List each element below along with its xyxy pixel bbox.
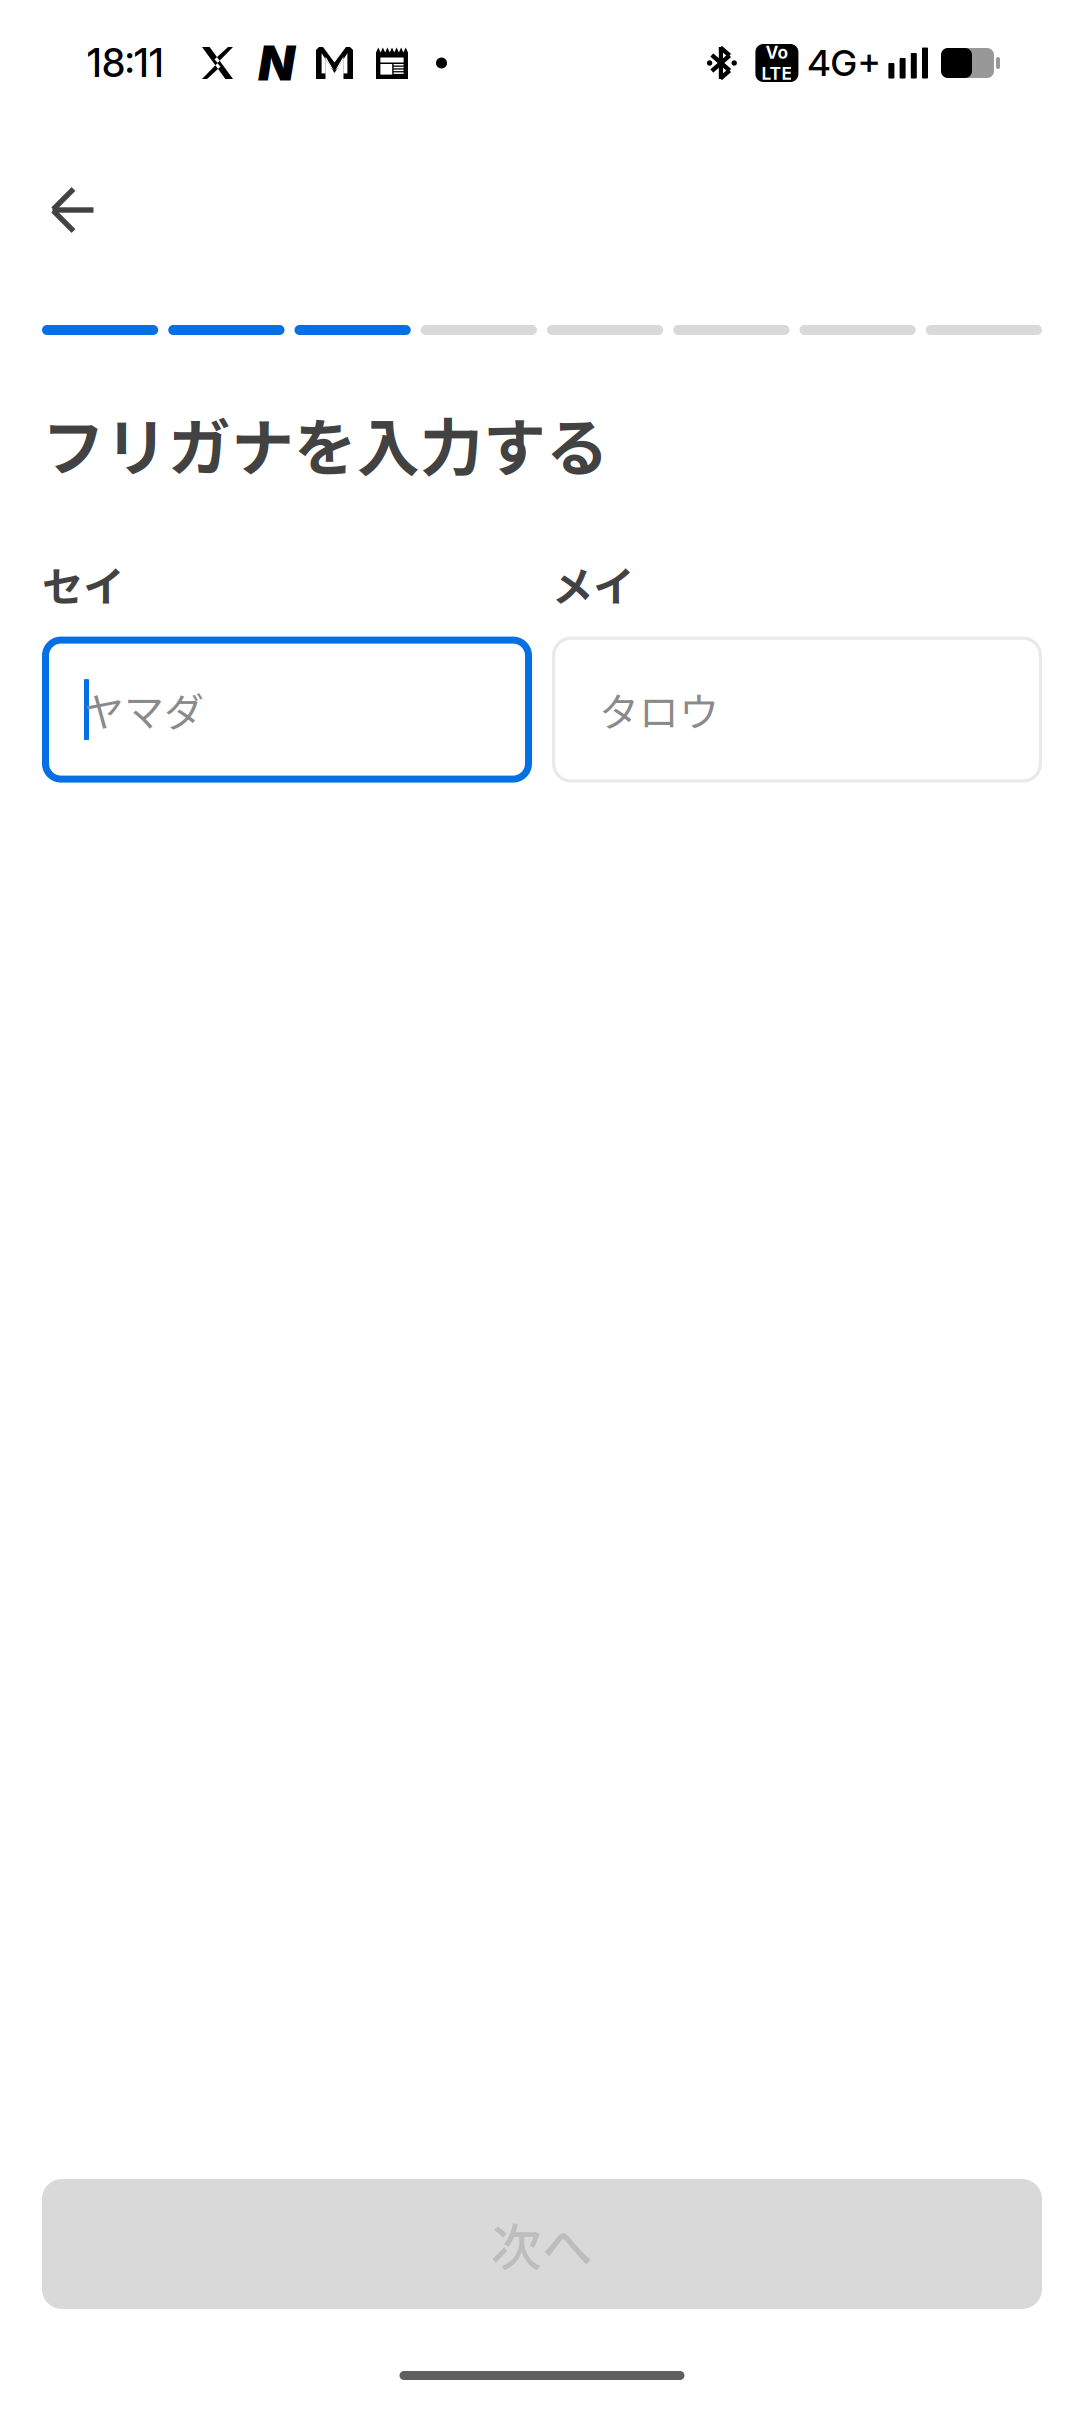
- staticText: 18:11: [87, 40, 164, 86]
- staticText: N: [258, 34, 295, 92]
- staticText: LTE: [761, 63, 792, 84]
- button[interactable]: タロウ: [552, 637, 1042, 783]
- staticText: 次へ: [491, 2207, 593, 2281]
- staticText: フリガナを入力する: [42, 398, 609, 489]
- staticText: セイ: [42, 554, 124, 614]
- staticText: タロウ: [599, 681, 719, 738]
- button[interactable]: Back: [0, 126, 124, 294]
- staticText: メイ: [552, 554, 634, 614]
- staticText: 4G+: [807, 41, 880, 85]
- staticText: ヤマダ: [84, 681, 204, 738]
- button[interactable]: ヤマダ: [42, 637, 532, 783]
- button[interactable]: 次へ: [42, 2179, 1042, 2309]
- staticText: Vo: [765, 42, 788, 63]
